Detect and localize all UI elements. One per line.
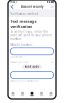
staticText: Mobile number	[10, 43, 32, 47]
staticText: Text message verification	[10, 19, 36, 29]
button[interactable]: Help	[49, 4, 55, 10]
staticText: Account security	[21, 5, 43, 8]
button[interactable]: Tab	[37, 90, 46, 97]
button[interactable]: Tab	[46, 90, 55, 97]
staticText: To verify it's you, enter the code we se…	[10, 30, 52, 41]
staticText: 9:41	[10, 0, 17, 4]
staticText: 0:30	[51, 61, 54, 63]
staticText: Didn't get a code? Try again	[10, 61, 28, 63]
button[interactable]: Tab	[18, 90, 27, 97]
staticText: Send code	[24, 65, 39, 69]
button[interactable]: Send code	[22, 65, 42, 69]
staticText: Verification method	[10, 12, 38, 16]
button[interactable]: Back	[9, 4, 15, 10]
staticText: Use a valid number	[10, 56, 23, 58]
button[interactable]: Tab	[8, 90, 17, 97]
staticText: We'll never share your details with anyo…	[10, 80, 38, 82]
button[interactable]: Tab	[27, 90, 36, 97]
